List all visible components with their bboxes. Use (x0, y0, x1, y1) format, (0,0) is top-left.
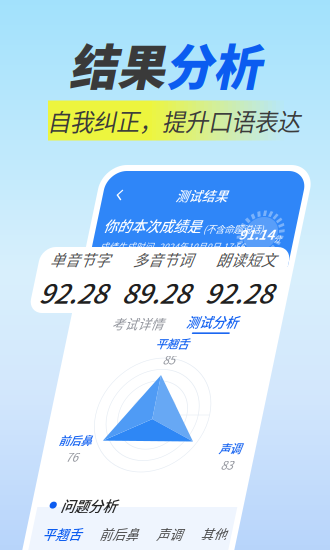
staticText: 91.14 (208, 224, 244, 244)
staticText: (不含命题说话) (172, 222, 232, 235)
staticText: 自我纠正，提升口语表达 (47, 104, 300, 137)
staticText: 平翘舌 (76, 524, 115, 542)
staticText: 测试结果 (138, 186, 190, 204)
staticText: 92.28 (209, 273, 277, 311)
staticText: 89.28 (126, 273, 194, 311)
staticText: 考试详情 (101, 314, 153, 332)
staticText: 平翘舌 (148, 335, 181, 351)
staticText: 前后鼻 (133, 524, 172, 542)
staticText: 测试分析 (175, 312, 227, 330)
button[interactable]: 考试详情 (101, 315, 153, 331)
staticText: 分 (244, 233, 251, 244)
staticText: 分析 (165, 29, 261, 98)
staticText: 92.28 (43, 273, 111, 311)
button[interactable]: 前后鼻 (133, 524, 172, 542)
button[interactable]: 其他 (234, 524, 260, 542)
staticText: 声调 (190, 524, 216, 542)
staticText: 其他 (234, 524, 260, 542)
staticText: 朗读短文 (213, 249, 273, 270)
staticText: 2024年10月9日 17:56 (131, 240, 217, 253)
staticText: 单音节字 (47, 249, 107, 270)
staticText: 前后鼻 (72, 432, 105, 449)
staticText: 你的本次成绩是 (72, 215, 170, 235)
staticText: 问题分析 (88, 495, 144, 515)
button[interactable]: 测试分析 (175, 314, 227, 332)
staticText: 成绩生成时间 (72, 240, 126, 253)
staticText: 85 (159, 351, 171, 368)
button[interactable]: 声调 (190, 524, 216, 542)
staticText: 声调 (234, 440, 256, 457)
staticText: 结果 (69, 29, 165, 98)
staticText: 多音节词 (130, 249, 190, 270)
button[interactable]: 平翘舌 (76, 524, 115, 542)
